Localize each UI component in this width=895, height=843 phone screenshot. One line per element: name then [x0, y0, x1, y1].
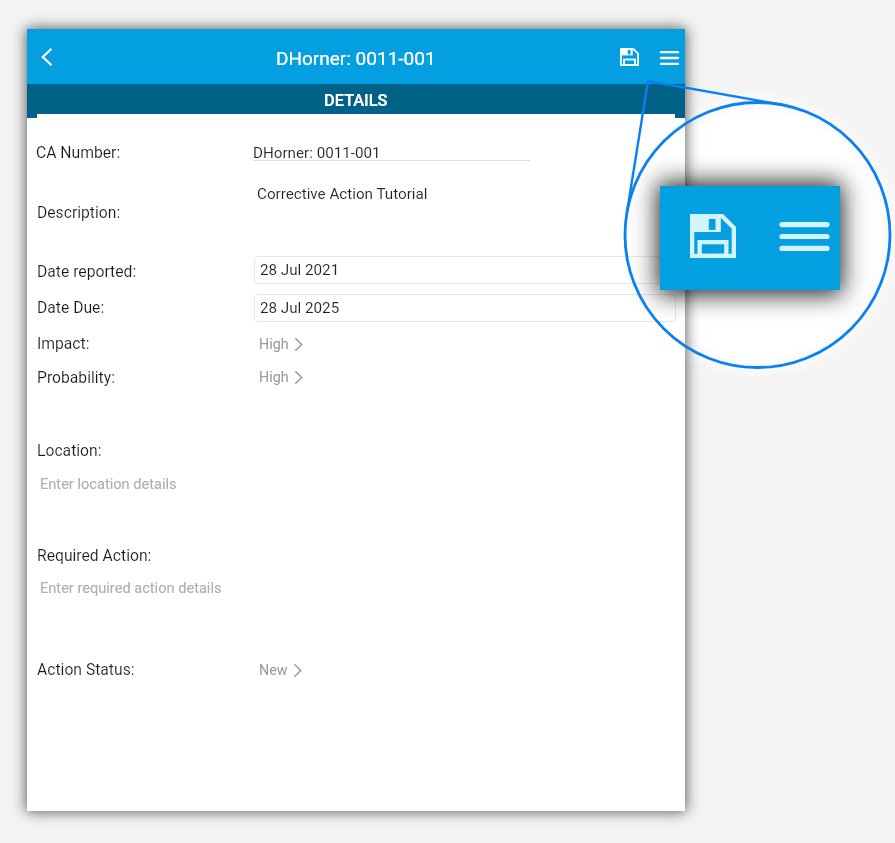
staticText: CA Number: — [36, 143, 121, 161]
button[interactable]: 28 Jul 2021 — [254, 256, 676, 284]
staticText: High — [259, 336, 289, 353]
staticText: DHorner: 0011-001 — [276, 47, 436, 69]
staticText: 28 Jul 2021 — [260, 261, 340, 279]
staticText: High — [259, 369, 289, 386]
staticText: Corrective Action Tutorial — [257, 185, 428, 203]
button[interactable]: Save — [607, 33, 651, 81]
button[interactable]: New — [259, 662, 302, 679]
staticText: Enter required action details — [40, 579, 222, 596]
staticText: Description: — [37, 203, 121, 221]
staticText: 28 Jul 2025 — [260, 299, 340, 317]
staticText: Action Status: — [37, 660, 135, 678]
staticText: DHorner: 0011-001 — [253, 144, 381, 162]
staticText: Enter location details — [40, 475, 177, 492]
staticText: Required Action: — [37, 546, 152, 564]
button[interactable]: 28 Jul 2025 — [254, 294, 676, 322]
staticText: Date reported: — [37, 262, 137, 280]
staticText: Date Due: — [37, 298, 105, 316]
staticText: Probability: — [37, 368, 115, 386]
button[interactable]: Menu — [651, 33, 690, 81]
button[interactable]: Back — [26, 36, 68, 78]
button[interactable]: High — [259, 369, 303, 386]
staticText: DETAILS — [324, 91, 388, 110]
button[interactable]: High — [259, 336, 303, 353]
staticText: New — [259, 662, 288, 679]
staticText: Impact: — [37, 334, 90, 352]
button[interactable]: DETAILS — [27, 84, 685, 114]
staticText: Location: — [37, 441, 102, 459]
